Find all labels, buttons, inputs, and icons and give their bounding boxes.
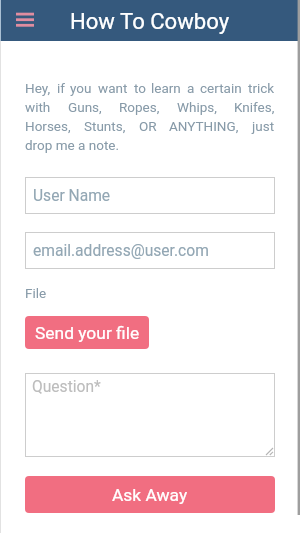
staticText: with — [25, 99, 51, 115]
staticText: Ropes, — [119, 99, 160, 115]
staticText: just — [252, 118, 275, 134]
staticText: Send your file — [35, 323, 140, 343]
staticText: Horses, — [25, 118, 71, 134]
button[interactable]: User Name — [25, 177, 275, 214]
staticText: Ask Away — [112, 485, 188, 505]
staticText: learn — [151, 80, 181, 96]
staticText: if — [57, 80, 65, 96]
staticText: Stunts, — [84, 118, 126, 134]
staticText: How To Cowboy — [70, 8, 230, 34]
staticText: Hey, — [25, 80, 51, 96]
staticText: Question* — [32, 378, 101, 396]
staticText: Guns, — [68, 99, 102, 115]
button[interactable]: Ask Away — [25, 476, 275, 513]
staticText: certain — [200, 80, 242, 96]
staticText: email.address@user.com — [33, 242, 209, 260]
staticText: OR — [139, 118, 157, 134]
staticText: ANYTHING, — [169, 118, 239, 134]
staticText: File — [25, 285, 47, 301]
staticText: to — [134, 80, 146, 96]
button[interactable]: Question* — [25, 373, 275, 457]
staticText: you — [70, 80, 92, 96]
staticText: trick — [248, 80, 275, 96]
staticText: Knifes, — [234, 99, 275, 115]
button[interactable]: Send your file — [25, 316, 149, 349]
staticText: a — [187, 80, 195, 96]
staticText: drop me a note. — [25, 137, 120, 153]
button[interactable]: email.address@user.com — [25, 232, 275, 269]
staticText: User Name — [33, 187, 111, 205]
staticText: want — [98, 80, 128, 96]
staticText: Whips, — [177, 99, 217, 115]
button[interactable]: Open navigation menu — [10, 7, 40, 35]
